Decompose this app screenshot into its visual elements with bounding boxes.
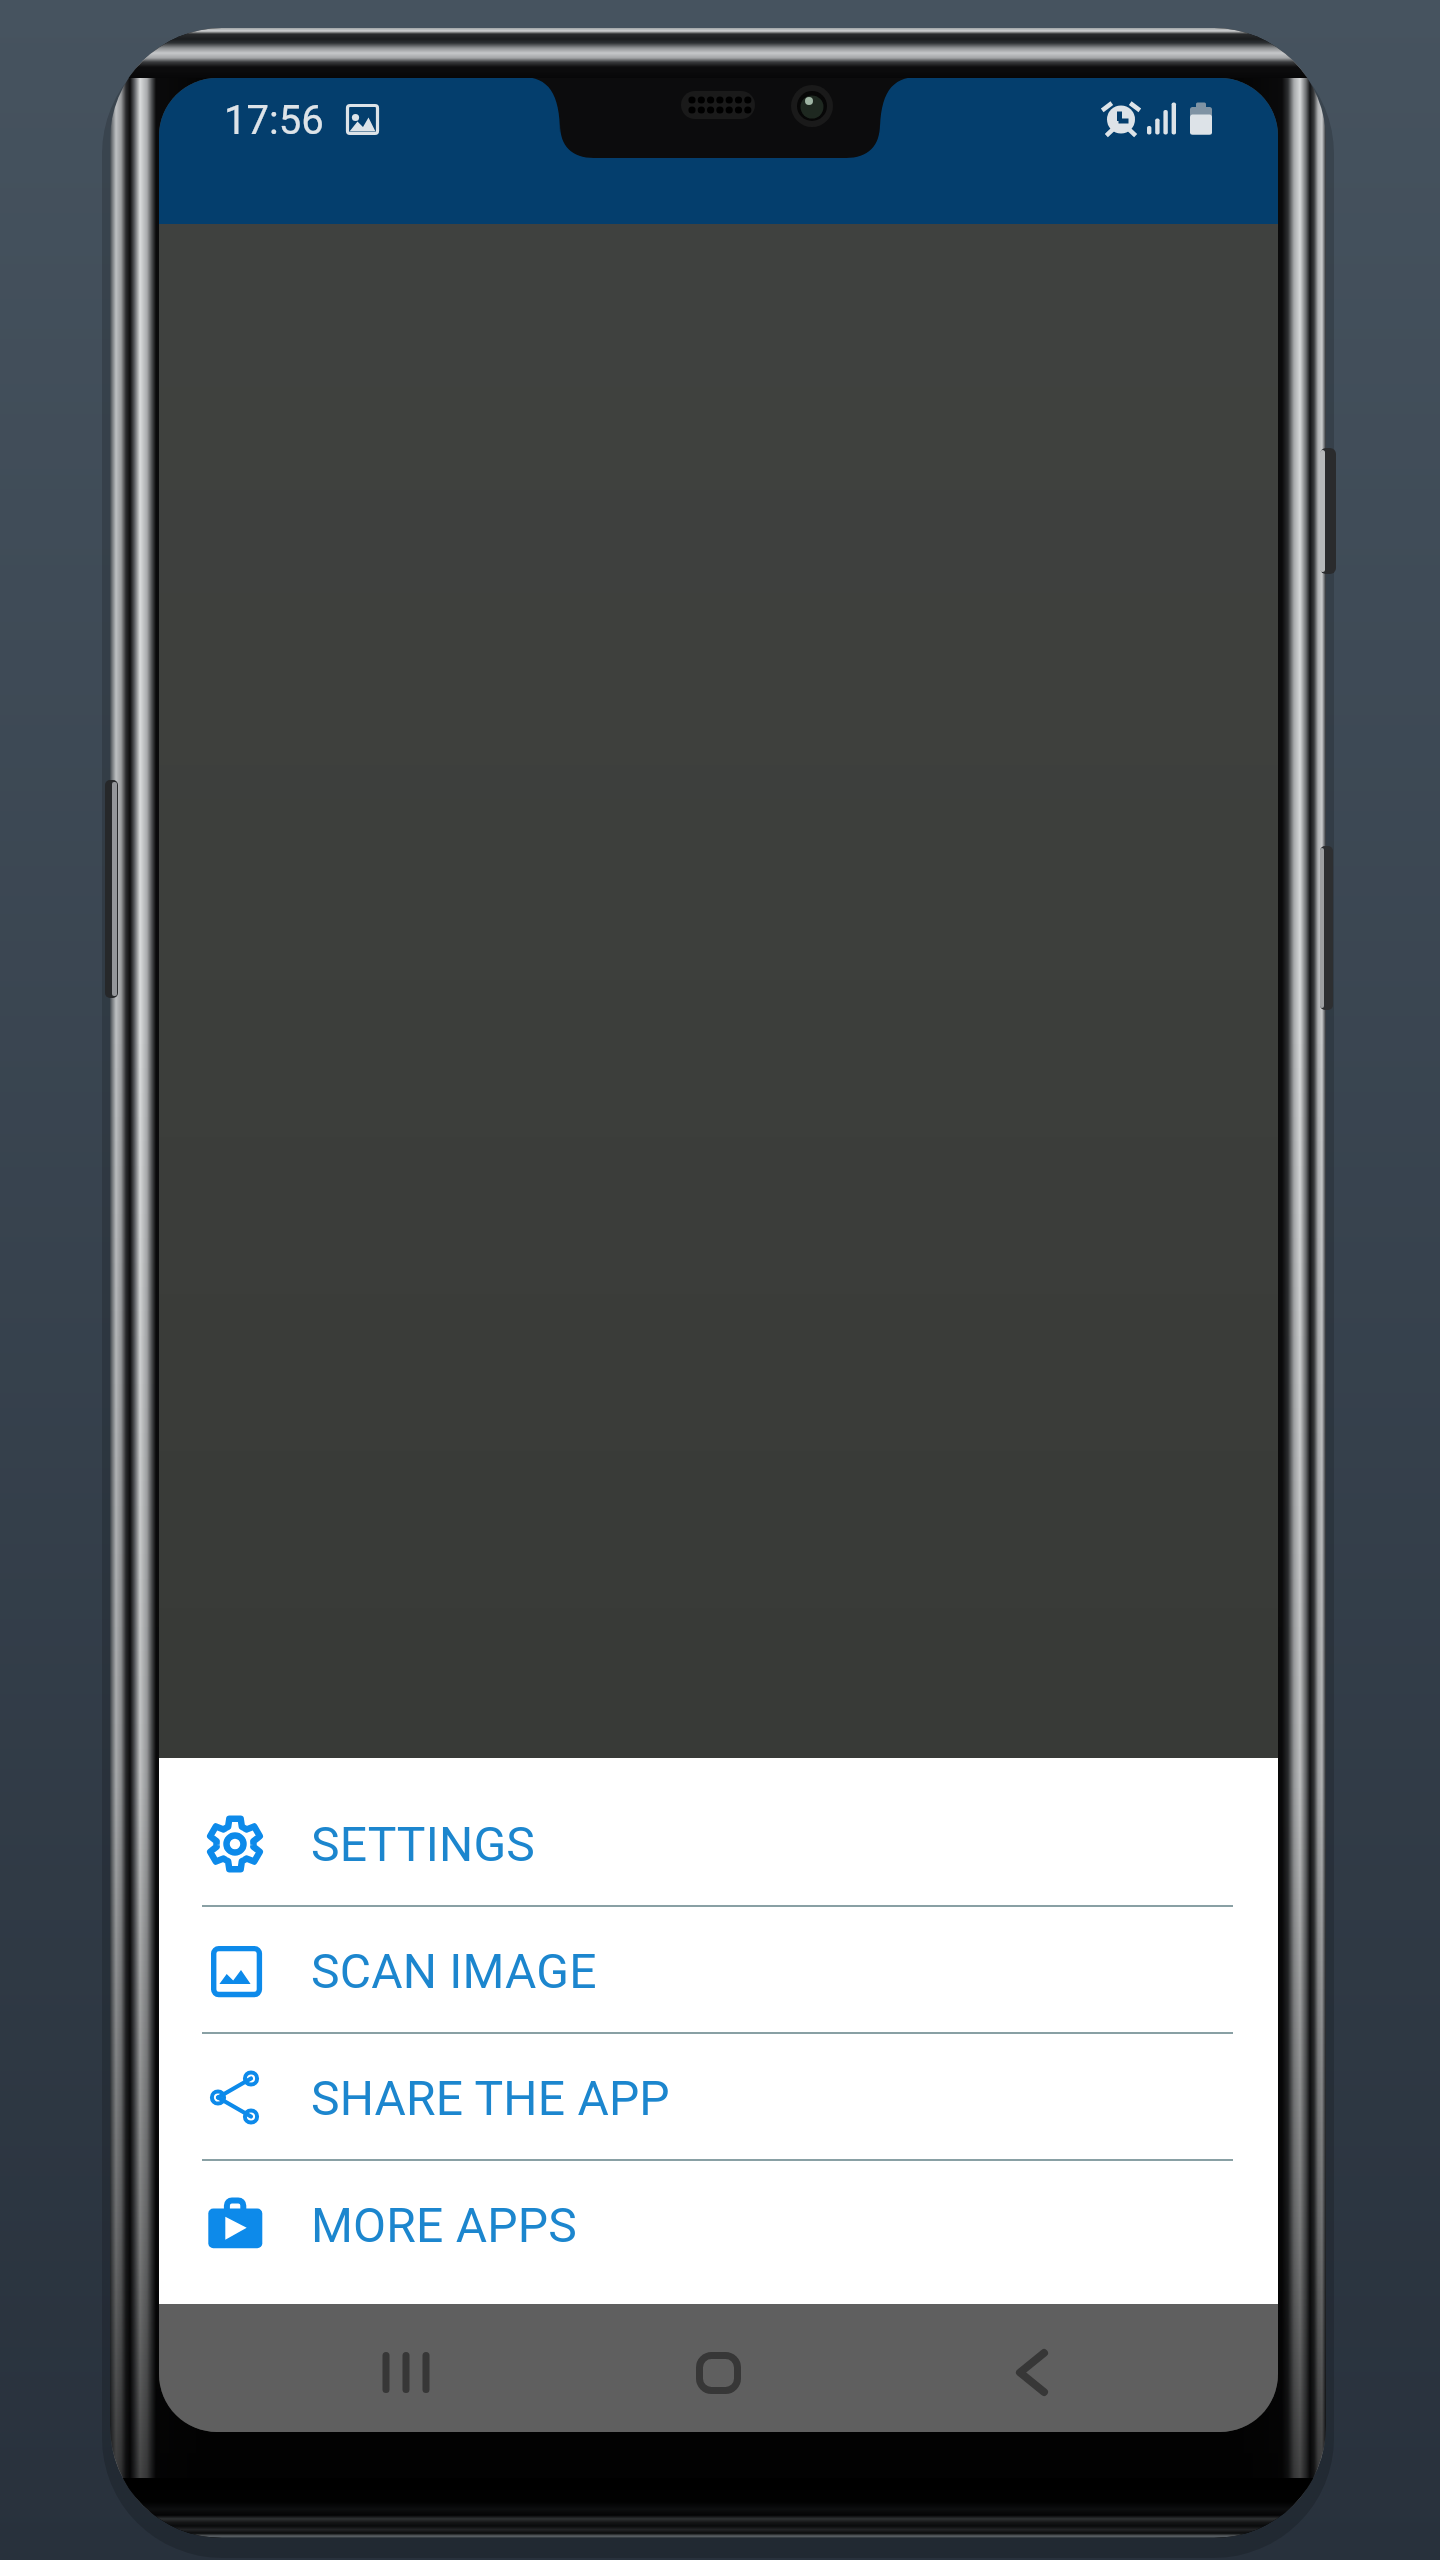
button[interactable]: MORE APPS — [159, 2161, 1278, 2288]
button[interactable]: Recent apps — [362, 2308, 450, 2396]
staticText: SCAN IMAGE — [311, 1943, 597, 1999]
staticText: SETTINGS — [311, 1816, 535, 1872]
staticText: MORE APPS — [311, 2197, 577, 2253]
button[interactable]: SHARE THE APP — [159, 2034, 1278, 2161]
button[interactable]: Back — [976, 2308, 1064, 2396]
staticText: SHARE THE APP — [311, 2070, 670, 2126]
button[interactable]: SCAN IMAGE — [159, 1907, 1278, 2034]
button[interactable]: SETTINGS — [159, 1780, 1278, 1907]
button[interactable]: Home — [674, 2308, 762, 2396]
staticText: 17:56 — [224, 97, 324, 144]
